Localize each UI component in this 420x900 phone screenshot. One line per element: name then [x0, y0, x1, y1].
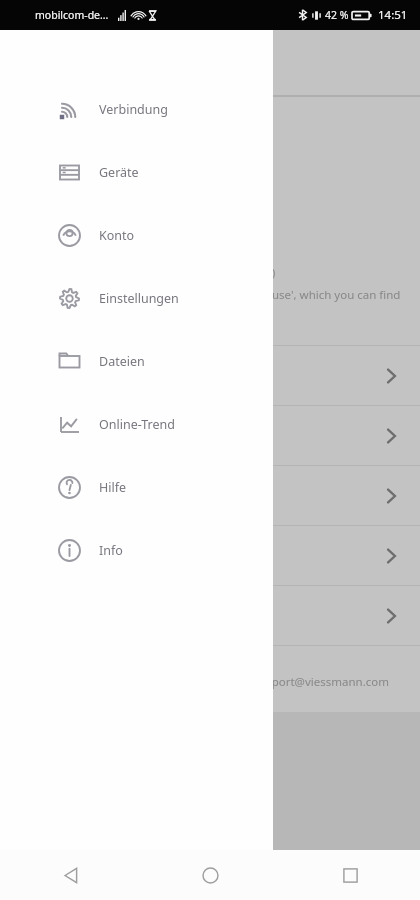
button[interactable]: Recent apps [280, 850, 420, 900]
button[interactable] [0, 406, 420, 465]
button[interactable]: Verbindung [0, 78, 273, 141]
button[interactable] [0, 586, 420, 645]
staticText: Dateien [99, 353, 145, 370]
staticText: Info [99, 542, 123, 559]
button[interactable]: Info [0, 519, 273, 582]
button[interactable]: Geräte [0, 141, 273, 204]
button[interactable] [0, 466, 420, 525]
staticText: support@viessmann.com [252, 674, 389, 690]
button[interactable]: Einstellungen [0, 267, 273, 330]
staticText: Geräte [99, 164, 139, 181]
staticText: 42 % [325, 8, 349, 22]
staticText: mobilcom-de… [35, 8, 109, 22]
button[interactable] [0, 526, 420, 585]
button[interactable]: Online-Trend [0, 393, 273, 456]
staticText: Konto [99, 227, 135, 244]
button[interactable]: Konto [0, 204, 273, 267]
staticText: f use', which you can find [265, 287, 401, 303]
staticText: 14:51 [378, 7, 408, 23]
staticText: Einstellungen [99, 290, 179, 307]
staticText: Verbindung [99, 101, 168, 118]
button[interactable]: Back [0, 850, 140, 900]
staticText: ) [272, 265, 276, 280]
staticText: Online-Trend [99, 416, 175, 433]
button[interactable] [0, 346, 420, 405]
button[interactable]: Hilfe [0, 456, 273, 519]
button[interactable]: Dateien [0, 330, 273, 393]
staticText: Hilfe [99, 479, 127, 496]
button[interactable]: Home [140, 850, 280, 900]
